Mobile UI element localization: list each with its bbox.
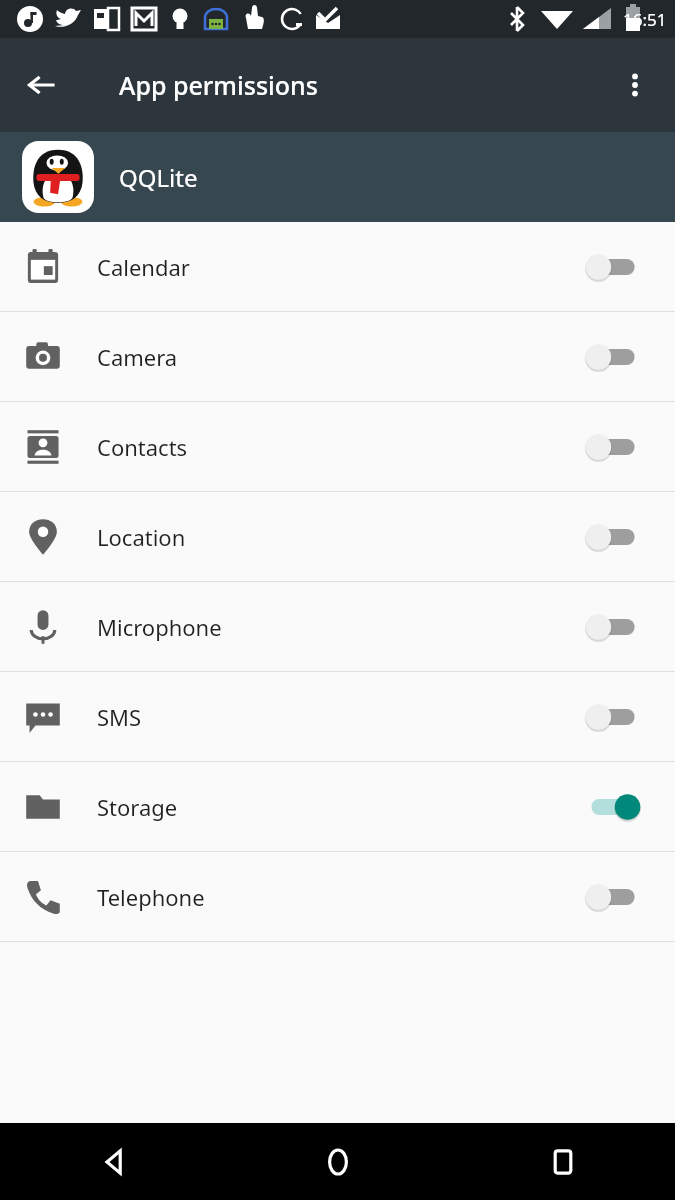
staticText: Microphone — [97, 612, 581, 642]
button[interactable]: Camera permission toggle — [581, 333, 645, 381]
button[interactable]: Recent apps — [450, 1123, 675, 1200]
button[interactable]: Calendar permission toggle — [581, 243, 645, 291]
staticText: Calendar — [97, 252, 581, 282]
button[interactable]: Contacts permission toggle — [581, 423, 645, 471]
staticText: App permissions — [119, 68, 318, 102]
button[interactable]: SMS permission toggle — [581, 693, 645, 741]
button[interactable]: SMS — [0, 672, 675, 761]
button[interactable]: Microphone — [0, 582, 675, 671]
button[interactable]: Contacts — [0, 402, 675, 491]
button[interactable]: QQLite — [0, 132, 675, 222]
staticText: Contacts — [97, 432, 581, 462]
staticText: Telephone — [97, 882, 581, 912]
button[interactable]: Storage — [0, 762, 675, 851]
button[interactable]: Telephone permission toggle — [581, 873, 645, 921]
staticText: Storage — [97, 792, 581, 822]
button[interactable]: Back — [10, 53, 74, 117]
button[interactable]: Calendar — [0, 222, 675, 311]
staticText: Location — [97, 522, 581, 552]
button[interactable]: Microphone permission toggle — [581, 603, 645, 651]
button[interactable]: More options — [603, 53, 667, 117]
staticText: SMS — [97, 702, 581, 732]
button[interactable]: Location — [0, 492, 675, 581]
staticText: 16:51 — [623, 8, 667, 31]
button[interactable]: Home — [225, 1123, 450, 1200]
button[interactable]: Back — [0, 1123, 225, 1200]
staticText: Camera — [97, 342, 581, 372]
button[interactable]: Camera — [0, 312, 675, 401]
staticText: QQLite — [119, 161, 198, 194]
button[interactable]: Location permission toggle — [581, 513, 645, 561]
button[interactable]: Telephone — [0, 852, 675, 941]
button[interactable]: Storage permission toggle — [581, 783, 645, 831]
